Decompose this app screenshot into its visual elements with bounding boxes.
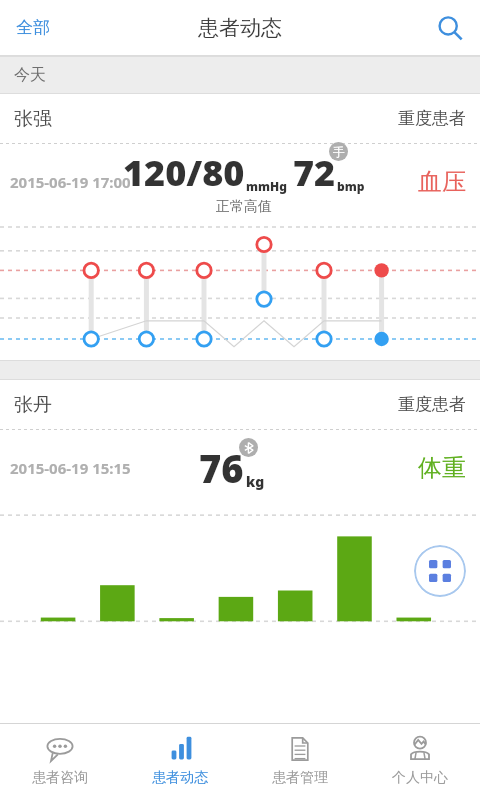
staticText: kg [246, 472, 265, 491]
button[interactable]: 全部 [4, 9, 62, 46]
staticText: 76 [199, 442, 244, 494]
button[interactable]: 张强 [0, 94, 480, 143]
staticText: 血压 [418, 167, 466, 197]
button[interactable]: Search [428, 6, 472, 50]
staticText: 个人中心 [392, 769, 448, 787]
staticText: 2015-06-19 17:00 [10, 172, 131, 192]
staticText: 张强 [14, 107, 52, 131]
button[interactable] [0, 220, 480, 360]
staticText: 体重 [418, 453, 466, 483]
staticText: 张丹 [14, 393, 52, 417]
button[interactable] [0, 506, 480, 628]
staticText: 重度患者 [398, 108, 466, 129]
button[interactable]: 个人中心 [360, 724, 480, 800]
staticText: 正常高值 [216, 198, 272, 216]
staticText: 2015-06-19 15:15 [10, 458, 131, 478]
staticText: bmp [337, 178, 365, 194]
staticText: 患者管理 [272, 769, 328, 787]
button[interactable]: 2015-06-19 17:00 [0, 144, 480, 220]
staticText: 全部 [16, 17, 50, 38]
staticText: 患者咨询 [32, 769, 88, 787]
staticText: 手 [333, 144, 345, 159]
staticText: 今天 [14, 65, 46, 85]
button[interactable]: 2015-06-19 15:15 [0, 430, 480, 506]
button[interactable]: 张丹 [0, 380, 480, 429]
button[interactable]: More options [414, 545, 466, 597]
staticText: mmHg [246, 178, 287, 194]
button[interactable]: 患者动态 [120, 724, 240, 800]
staticText: 120/80 [123, 148, 245, 197]
staticText: 重度患者 [398, 394, 466, 415]
staticText: 患者动态 [152, 769, 208, 787]
button[interactable]: 患者咨询 [0, 724, 120, 800]
staticText: 72 [293, 148, 336, 197]
staticText: 患者动态 [198, 15, 282, 41]
button[interactable]: 患者管理 [240, 724, 360, 800]
